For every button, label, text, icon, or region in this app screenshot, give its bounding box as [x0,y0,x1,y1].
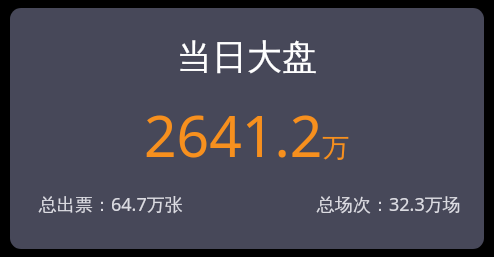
staticText: 当日大盘 [177,35,317,79]
button[interactable]: 总出票：64.7万张 [39,192,183,217]
button[interactable]: 总场次：32.3万场 [317,192,461,217]
button[interactable]: 当日大盘 [10,8,484,249]
staticText: 2641.2万 [144,96,350,174]
